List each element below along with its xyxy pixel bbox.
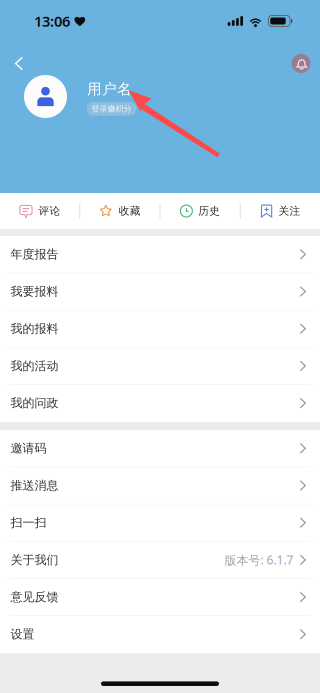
button[interactable]: 我的问政: [0, 385, 320, 422]
button[interactable]: 我的报料: [0, 310, 320, 348]
staticText: 我要报料: [10, 284, 58, 299]
staticText: 我的活动: [10, 358, 58, 373]
staticText: 设置: [10, 627, 34, 642]
button[interactable]: 我的活动: [0, 348, 320, 385]
button[interactable]: 用户名: [87, 80, 132, 98]
staticText: 邀请码: [10, 441, 46, 456]
button[interactable]: 设置: [0, 616, 320, 653]
button[interactable]: 扫一扫: [0, 504, 320, 542]
staticText: 关注: [279, 204, 301, 217]
button[interactable]: 我要报料: [0, 273, 320, 310]
staticText: 我的问政: [10, 396, 58, 410]
staticText: 关于我们: [10, 552, 58, 567]
staticText: 收藏: [119, 204, 141, 217]
staticText: 推送消息: [10, 478, 58, 493]
button[interactable]: 收藏: [80, 192, 159, 229]
staticText: 版本号: 6.1.7: [225, 552, 294, 568]
staticText: 评论: [38, 204, 60, 217]
button[interactable]: 关注: [241, 192, 320, 229]
button[interactable]: Notifications: [286, 50, 316, 76]
staticText: 我的报料: [10, 321, 58, 336]
staticText: 扫一扫: [10, 515, 46, 530]
staticText: 意见反馈: [10, 590, 58, 604]
button[interactable]: 历史: [160, 192, 240, 229]
button[interactable]: 年度报告: [0, 236, 320, 273]
button[interactable]: Back: [5, 50, 33, 76]
staticText: 历史: [198, 204, 220, 217]
staticText: 年度报告: [10, 247, 58, 262]
button[interactable]: 登录赚积分: [87, 102, 136, 116]
staticText: 登录赚积分: [92, 104, 132, 114]
button[interactable]: 评论: [0, 192, 79, 229]
staticText: 用户名: [87, 80, 132, 98]
button[interactable]: 邀请码: [0, 430, 320, 467]
button[interactable]: 意见反馈: [0, 579, 320, 616]
staticText: 13:06: [34, 11, 70, 31]
button[interactable]: 关于我们: [0, 542, 320, 579]
button[interactable]: 推送消息: [0, 467, 320, 504]
